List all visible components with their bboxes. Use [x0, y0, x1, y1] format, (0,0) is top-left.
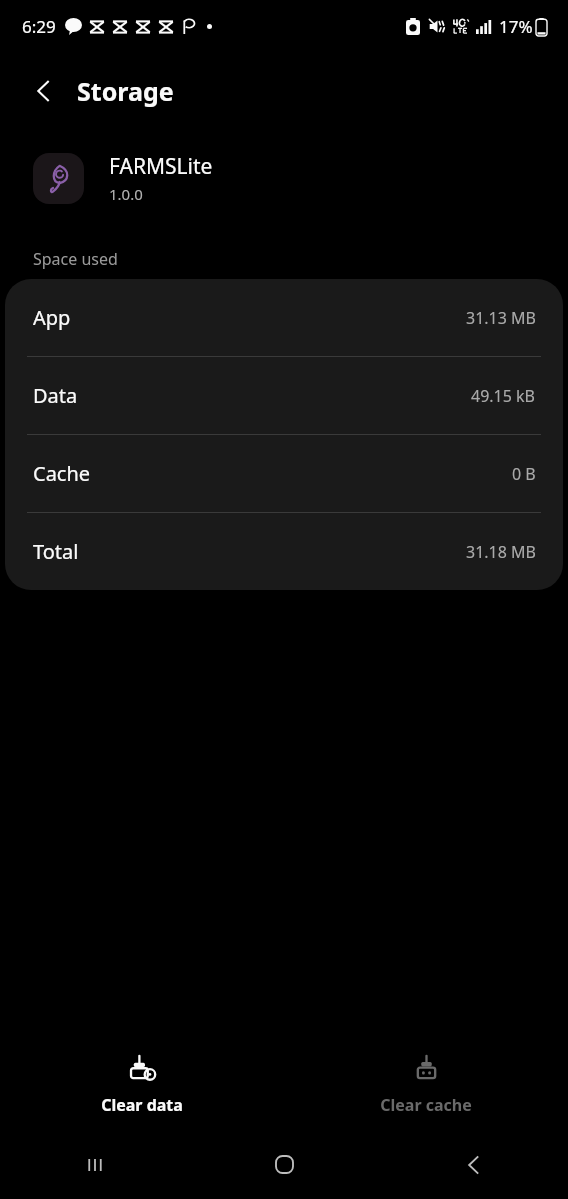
- staticText: 31.18 MB: [466, 541, 536, 563]
- staticText: Space used: [33, 248, 118, 270]
- staticText: FARMSLite: [109, 152, 213, 181]
- button[interactable]: Clear data: [0, 1046, 284, 1124]
- staticText: 1.0.0: [109, 184, 143, 204]
- staticText: App: [33, 304, 71, 331]
- staticText: Clear cache: [380, 1094, 472, 1116]
- staticText: Clear data: [101, 1094, 183, 1116]
- button[interactable]: Back: [20, 67, 68, 115]
- staticText: 0 B: [512, 463, 536, 485]
- button[interactable]: Clear cache: [284, 1046, 568, 1124]
- staticText: 6:29: [22, 15, 56, 38]
- staticText: Storage: [77, 74, 174, 108]
- button[interactable]: Back: [379, 1130, 568, 1199]
- button[interactable]: Cache: [5, 435, 563, 512]
- staticText: Cache: [33, 460, 91, 487]
- button[interactable]: Home: [190, 1130, 379, 1199]
- staticText: 49.15 kB: [471, 385, 536, 407]
- staticText: Total: [33, 538, 79, 565]
- staticText: 17%: [499, 15, 533, 38]
- staticText: 31.13 MB: [466, 307, 536, 329]
- button[interactable]: Total: [5, 513, 563, 590]
- button[interactable]: App: [5, 279, 563, 356]
- button[interactable]: Data: [5, 357, 563, 434]
- staticText: Data: [33, 382, 78, 409]
- button[interactable]: Recents: [0, 1130, 190, 1199]
